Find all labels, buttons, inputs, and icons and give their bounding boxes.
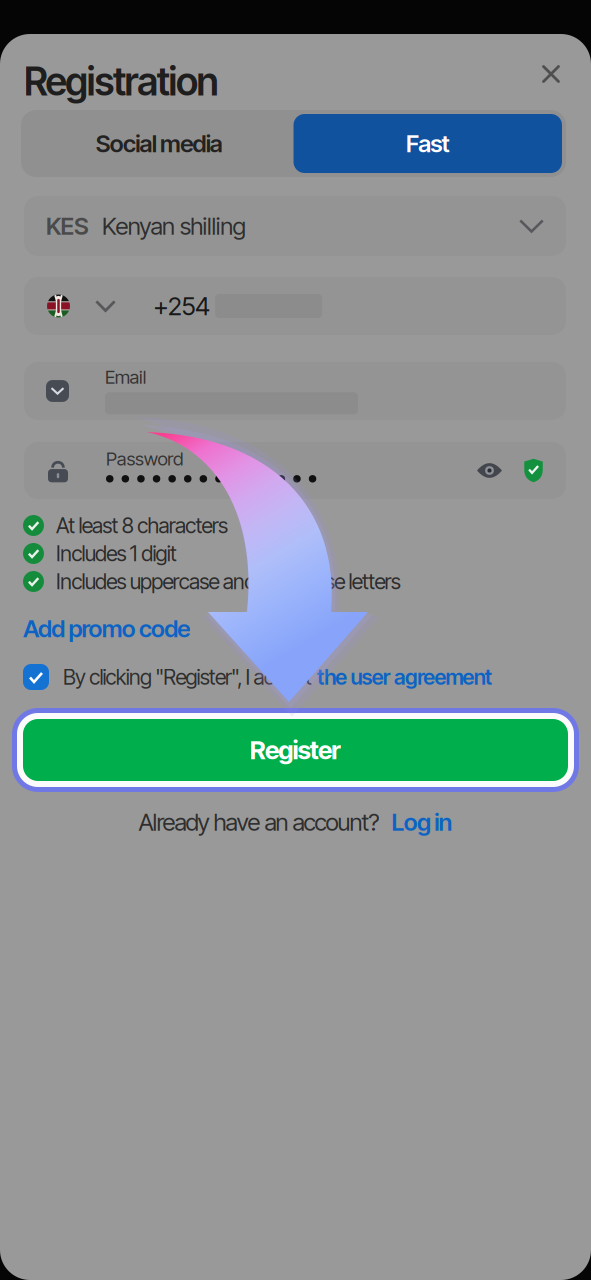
staticText: Kenyan shilling bbox=[102, 211, 247, 240]
staticText: Social media bbox=[96, 129, 223, 158]
staticText: the user agreement bbox=[317, 664, 492, 690]
button[interactable]: the user agreement bbox=[317, 664, 492, 690]
staticText: +254 bbox=[153, 291, 210, 321]
staticText: Includes 1 digit bbox=[56, 541, 177, 566]
staticText: Register bbox=[250, 735, 341, 765]
staticText: Registration bbox=[24, 58, 219, 105]
button[interactable]: Select country code bbox=[47, 294, 116, 317]
button[interactable]: Accept the user agreement bbox=[23, 664, 49, 690]
button[interactable]: Social media bbox=[25, 114, 293, 173]
staticText: Already have an account? bbox=[138, 807, 379, 836]
button[interactable]: Close bbox=[529, 52, 573, 96]
button[interactable]: Show password bbox=[473, 454, 506, 487]
staticText: KES bbox=[46, 211, 89, 240]
staticText: Password bbox=[106, 447, 183, 470]
staticText: By clicking "Register", I accept bbox=[63, 664, 312, 690]
staticText: At least 8 characters bbox=[56, 513, 228, 538]
staticText: Log in bbox=[391, 807, 452, 836]
staticText: Includes uppercase and lowercase letters bbox=[56, 569, 401, 594]
button[interactable]: KES bbox=[24, 196, 566, 256]
staticText: Fast bbox=[406, 129, 449, 158]
button[interactable]: Add promo code bbox=[23, 614, 190, 643]
button[interactable]: Log in bbox=[391, 807, 452, 836]
staticText: Add promo code bbox=[23, 614, 190, 643]
button[interactable]: Register bbox=[12, 708, 579, 792]
button[interactable]: Fast bbox=[293, 114, 562, 173]
staticText: Email bbox=[105, 366, 147, 388]
